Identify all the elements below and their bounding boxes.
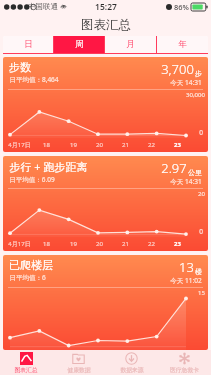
button[interactable]: 步行 + 跑步距离 [3,156,208,251]
staticText: 步行 + 跑步距离 [9,159,88,174]
button[interactable]: 健康数据 [52,350,105,375]
staticText: 21 [122,141,129,149]
staticText: 公里 [188,168,202,177]
staticText: 4月17日 [8,240,31,248]
staticText: 19 [70,141,77,149]
staticText: 今天 11:02 [170,276,202,285]
button[interactable]: 步数 [3,57,208,152]
staticText: 30,000 [186,91,205,99]
staticText: 22 [148,141,155,149]
staticText: 数据来源 [120,366,144,373]
staticText: 15 [198,289,205,297]
staticText: 20 [96,240,103,248]
staticText: 年 [178,39,187,50]
button[interactable]: 月 [105,36,156,53]
staticText: 健康数据 [67,366,91,373]
staticText: 日平均值：6 [9,273,46,282]
button[interactable]: 数据来源 [105,350,158,375]
staticText: 医疗急救卡 [170,366,199,373]
staticText: 15:27 [95,1,117,13]
staticText: 21 [122,240,129,248]
staticText: 86% [174,2,189,12]
staticText: 楼 [195,267,202,276]
staticText: 18 [43,141,50,149]
button[interactable]: 图表汇总 [0,350,52,375]
staticText: 20 [96,141,103,149]
staticText: 18 [43,240,50,248]
staticText: 月 [126,39,135,50]
staticText: 步数 [9,60,31,74]
button[interactable]: 已爬楼层 [3,255,208,350]
staticText: 图表汇总 [14,366,38,373]
staticText: 周 [75,39,84,50]
staticText: 日平均值：6.09 [9,175,55,184]
staticText: 20 [198,190,205,198]
staticText: 中国联通 [28,2,58,11]
button[interactable]: 年 [157,36,208,53]
button[interactable]: 周 [54,36,104,53]
button[interactable]: 日 [3,36,53,53]
staticText: 19 [70,240,77,248]
staticText: 今天 14:31 [170,177,202,186]
staticText: 今天 14:31 [170,78,202,87]
staticText: 已爬楼层 [9,258,53,272]
staticText: 3,700 [161,60,194,78]
staticText: 0 [199,227,203,236]
staticText: 4月17日 [8,141,31,149]
staticText: 步 [195,69,202,78]
staticText: 23 [174,240,181,248]
staticText: 2.97 [161,159,187,177]
staticText: 0 [199,128,203,137]
staticText: 图表汇总 [81,17,131,33]
staticText: 22 [148,240,155,248]
staticText: 13 [179,258,194,276]
button[interactable]: 医疗急救卡 [158,350,211,375]
staticText: 日平均值：8,464 [9,75,59,84]
staticText: 23 [174,141,181,149]
staticText: 日 [24,39,33,50]
